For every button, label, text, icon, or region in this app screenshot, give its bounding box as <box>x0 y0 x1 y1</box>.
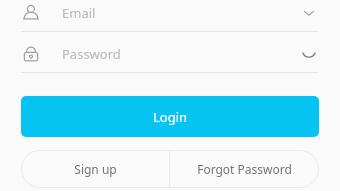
button[interactable]: Login <box>21 96 319 137</box>
other: Password <box>21 44 41 64</box>
button[interactable]: Forgot Password <box>170 150 319 188</box>
button[interactable]: Password <box>21 41 319 67</box>
staticText: Login <box>153 108 188 126</box>
button[interactable]: Sign up <box>21 150 169 188</box>
button[interactable]: Toggle password visibility <box>299 44 319 64</box>
button[interactable]: Account <box>21 0 319 26</box>
staticText: Forgot Password <box>197 161 292 177</box>
other: Account <box>21 3 41 23</box>
staticText: Email <box>62 4 299 22</box>
staticText: Sign up <box>74 161 117 177</box>
button[interactable]: Show accounts <box>299 3 319 23</box>
staticText: Password <box>62 45 299 63</box>
